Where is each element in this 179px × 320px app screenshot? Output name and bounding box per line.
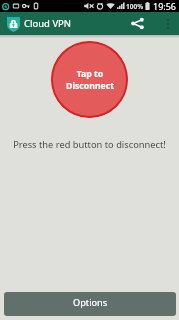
button[interactable]: More options bbox=[159, 12, 177, 35]
staticText: Press the red button to disconnect! bbox=[13, 138, 166, 151]
staticText: Tap to Disconnect bbox=[66, 68, 114, 91]
button[interactable]: Share bbox=[125, 12, 150, 35]
staticText: Cloud VPN bbox=[24, 17, 72, 30]
button[interactable]: Options bbox=[4, 292, 176, 316]
staticText: 19:56 bbox=[153, 0, 177, 12]
staticText: Options bbox=[73, 296, 108, 309]
staticText: 100% bbox=[126, 2, 144, 11]
button[interactable]: Tap to Disconnect bbox=[51, 41, 128, 118]
